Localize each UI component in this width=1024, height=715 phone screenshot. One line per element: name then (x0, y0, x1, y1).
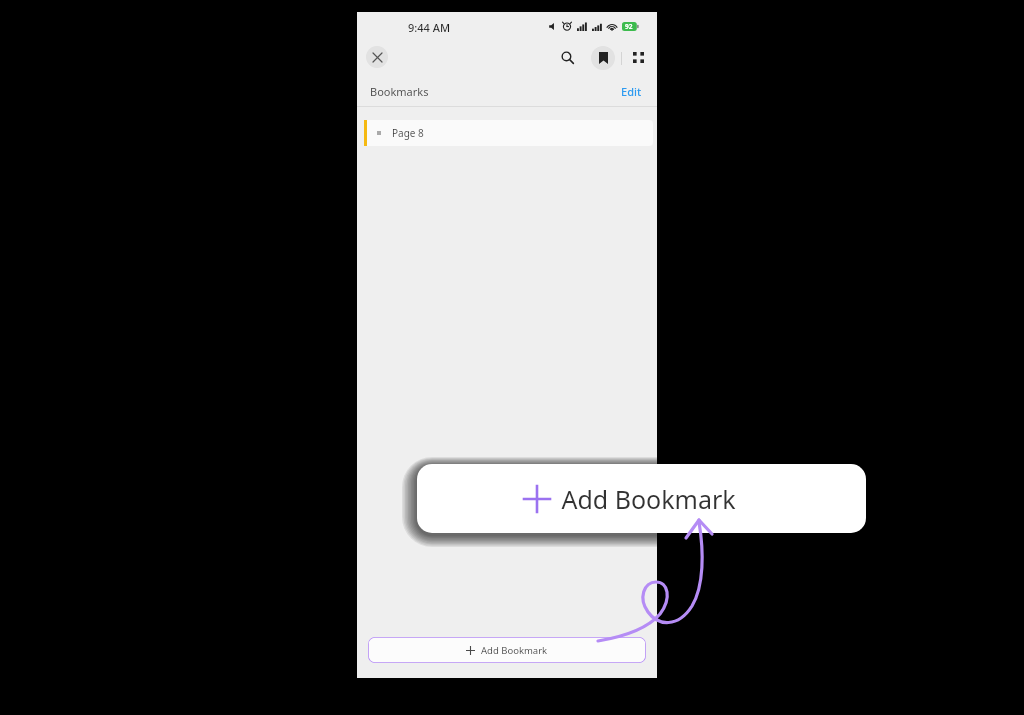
button[interactable]: Close (366, 46, 388, 68)
staticText: Add Bookmark (561, 482, 736, 516)
staticText: Edit (621, 84, 642, 99)
button[interactable]: Bookmarks (591, 46, 615, 70)
button[interactable]: Add Bookmark (368, 637, 646, 663)
button[interactable]: Grid view (627, 46, 649, 68)
staticText: Add Bookmark (481, 644, 548, 657)
button[interactable]: Search (556, 46, 578, 68)
staticText: Bookmarks (370, 84, 429, 99)
staticText: Page 8 (392, 126, 424, 140)
button[interactable]: Edit (621, 84, 642, 99)
staticText: 9:44 AM (408, 20, 451, 35)
staticText: 92 (625, 22, 633, 31)
button[interactable]: Page 8 (364, 120, 650, 146)
button[interactable]: Add Bookmark (417, 464, 866, 533)
